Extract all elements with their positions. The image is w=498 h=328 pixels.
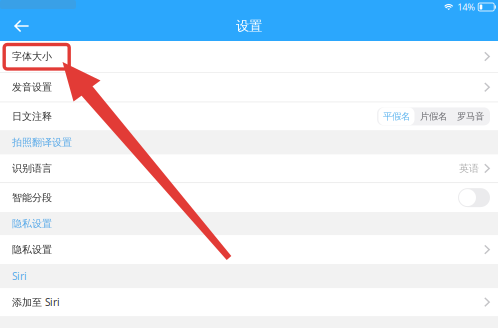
button[interactable]: 平假名 (378, 107, 414, 125)
button[interactable]: 罗马音 (452, 107, 488, 125)
button[interactable]: 字体大小 (0, 41, 498, 72)
staticText: 拍照翻译设置 (12, 136, 72, 149)
staticText: 添加至 Siri (12, 295, 60, 309)
staticText: 平假名 (383, 110, 410, 122)
button[interactable]: 隐私设置 (0, 235, 498, 264)
staticText: 片假名 (420, 110, 447, 122)
button[interactable]: 识别语言 (0, 154, 498, 182)
button[interactable]: 添加至 Siri (0, 288, 498, 316)
button[interactable]: 返回 (0, 12, 44, 39)
button[interactable]: 智能分段 (458, 188, 490, 207)
staticText: 智能分段 (12, 191, 52, 204)
staticText: 字体大小 (12, 50, 52, 63)
button[interactable]: 片假名 (415, 107, 451, 125)
staticText: 设置 (236, 18, 262, 34)
button[interactable]: 发音设置 (0, 73, 498, 102)
staticText: 隐私设置 (12, 217, 52, 230)
staticText: 罗马音 (457, 110, 484, 122)
staticText: 识别语言 (12, 162, 52, 175)
staticText: 发音设置 (12, 81, 52, 93)
staticText: 隐私设置 (12, 243, 52, 256)
button[interactable]: 智能分段 (0, 183, 498, 212)
staticText: 英语 (459, 162, 479, 175)
button[interactable]: 日文注释 (0, 102, 498, 130)
staticText: Siri (12, 269, 27, 283)
staticText: 日文注释 (12, 110, 52, 123)
staticText: 14% (457, 1, 475, 13)
